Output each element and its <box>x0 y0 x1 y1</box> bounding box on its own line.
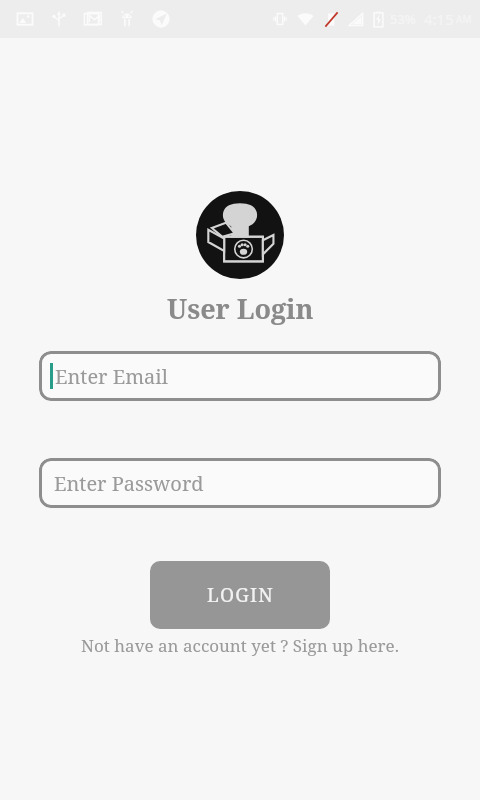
button[interactable]: Enter Email <box>39 351 441 401</box>
staticText: User Login <box>167 290 314 327</box>
staticText: Not have an account yet ? Sign up here. <box>81 634 399 657</box>
button[interactable]: LOGIN <box>150 561 330 629</box>
staticText: LOGIN <box>207 582 274 608</box>
staticText: Enter Password <box>54 470 204 497</box>
button[interactable]: Enter Password <box>39 458 441 508</box>
staticText: Enter Email <box>55 363 168 390</box>
button[interactable]: Not have an account yet ? Sign up here. <box>75 632 405 659</box>
